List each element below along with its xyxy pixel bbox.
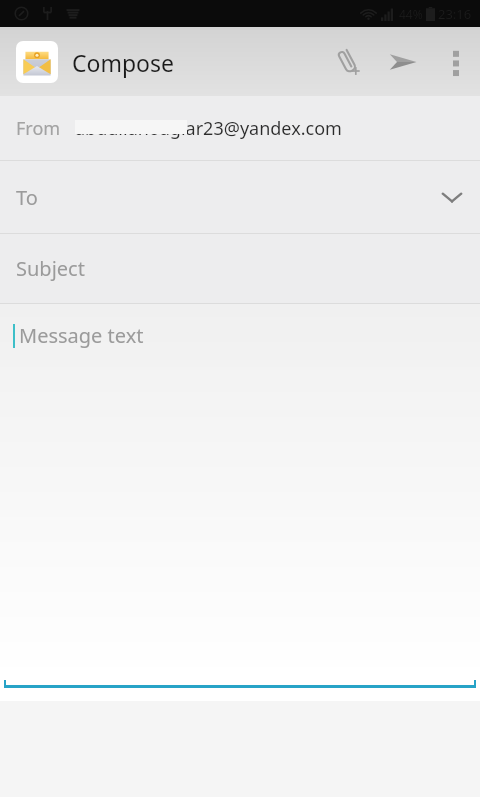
staticText: Message text [19,322,144,349]
staticText: Subject [16,255,85,282]
button[interactable]: Send [374,27,432,96]
staticText: 44% [399,6,423,22]
staticText: To [16,184,38,211]
button[interactable]: From [0,96,480,160]
button[interactable]: More options [432,27,480,96]
button[interactable]: To [0,161,480,233]
staticText: 23:16 [438,5,472,23]
button[interactable]: Message text [0,304,480,680]
button[interactable]: Compose [0,41,183,83]
staticText: From [16,116,61,141]
staticText: abdullahoaglar23@yandex.com [75,116,342,141]
button[interactable]: Show Cc and Bcc [424,169,480,225]
staticText: Compose [72,47,175,78]
button[interactable]: Attach file [322,27,374,96]
button[interactable]: Subject [0,234,480,303]
